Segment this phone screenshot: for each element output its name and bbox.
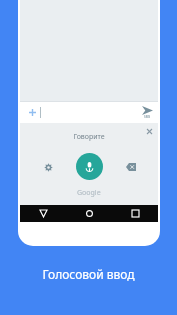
button[interactable]: Settings: [38, 157, 58, 177]
staticText: SMS: [144, 115, 151, 119]
button[interactable]: Recents: [112, 205, 158, 222]
button[interactable]: Send SMS: [142, 106, 153, 119]
button[interactable]: Home: [66, 205, 112, 222]
staticText: Говорите: [73, 132, 105, 142]
button[interactable]: Attach: [24, 104, 40, 120]
button[interactable]: Close: [143, 125, 155, 137]
button[interactable]: Microphone: [76, 153, 103, 180]
staticText: Google: [77, 188, 101, 198]
button[interactable]: Backspace: [121, 157, 141, 177]
button[interactable]: Back: [20, 205, 66, 222]
staticText: Голосовой ввод: [42, 266, 135, 282]
